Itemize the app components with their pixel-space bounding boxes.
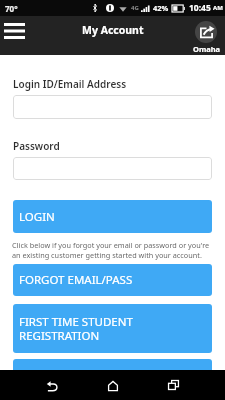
staticText: Click below if you forgot your email or … [12,240,214,260]
staticText: Password [13,139,60,153]
button[interactable] [13,359,212,379]
button[interactable]: Menu [4,23,25,39]
button[interactable]: LOGIN [13,200,212,233]
button[interactable]: Home [93,370,133,400]
button[interactable]: FORGOT EMAIL/PASS [13,264,212,296]
staticText: 4G [131,4,139,12]
button[interactable]: FIRST TIME STUDENT REGISTRATION [13,304,212,353]
staticText: 70° [5,3,18,14]
staticText: 42% [153,3,169,13]
staticText: 10:45 [189,2,211,14]
staticText: Omaha [193,44,221,54]
button[interactable] [13,157,212,180]
staticText: FORGOT EMAIL/PASS [19,272,133,288]
staticText: FIRST TIME STUDENT REGISTRATION [19,314,133,343]
staticText: My Account [82,23,144,37]
button[interactable]: Share Omaha [193,21,221,54]
staticText: AM [213,4,223,12]
button[interactable]: Recent apps [153,370,193,400]
button[interactable] [13,95,212,119]
staticText: Login ID/Email Address [13,77,127,91]
button[interactable]: Back [32,370,72,400]
staticText: LOGIN [19,209,55,225]
